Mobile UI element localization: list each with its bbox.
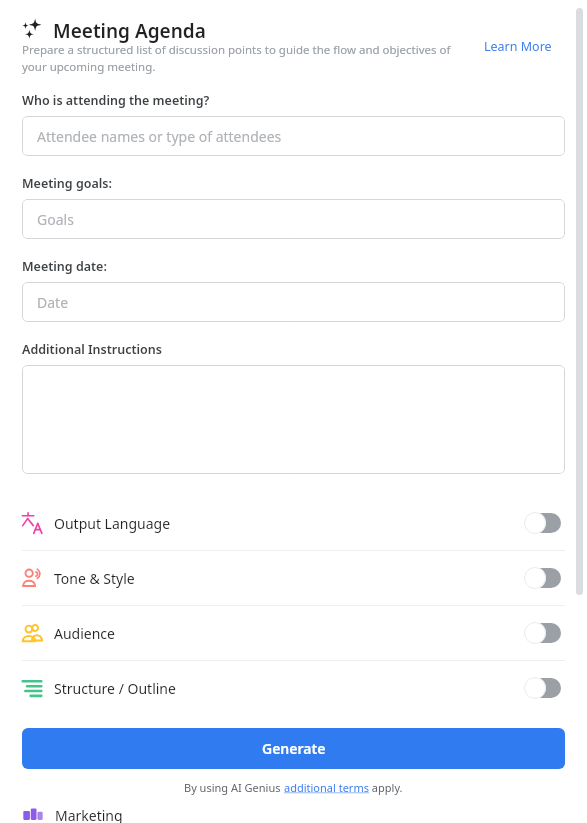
button[interactable]: Generate xyxy=(22,728,565,769)
button[interactable] xyxy=(22,365,565,474)
button[interactable]: Output Language xyxy=(0,496,587,550)
staticText: Meeting Agenda xyxy=(53,18,206,44)
staticText: Structure / Outline xyxy=(54,679,176,698)
staticText: apply. xyxy=(369,780,403,795)
button[interactable]: Toggle Output Language xyxy=(514,506,572,540)
staticText: Meeting goals: xyxy=(22,175,112,192)
staticText: Who is attending the meeting? xyxy=(22,92,210,109)
staticText: Additional Instructions xyxy=(22,341,162,358)
staticText: Generate xyxy=(262,739,326,758)
staticText: Attendee names or type of attendees xyxy=(37,127,282,146)
staticText: Goals xyxy=(37,210,74,229)
button[interactable]: Goals xyxy=(22,199,565,239)
staticText: Output Language xyxy=(54,514,171,533)
staticText: Date xyxy=(37,293,69,312)
staticText: Audience xyxy=(54,624,115,643)
staticText: Meeting date: xyxy=(22,258,107,275)
staticText: Prepare a structured list of discussion … xyxy=(22,42,466,75)
button[interactable]: Audience xyxy=(0,606,587,660)
button[interactable]: Tone & Style xyxy=(0,551,587,605)
button[interactable]: Toggle Tone & Style xyxy=(514,561,572,595)
staticText: Learn More xyxy=(484,38,552,55)
button[interactable]: Toggle Structure / Outline xyxy=(514,671,572,705)
button[interactable]: Structure / Outline xyxy=(0,661,587,715)
button[interactable]: Attendee names or type of attendees xyxy=(22,116,565,156)
staticText: Marketing xyxy=(55,806,123,823)
button[interactable]: Learn More xyxy=(483,37,553,56)
button[interactable]: additional terms xyxy=(284,780,369,795)
staticText: By using AI Genius xyxy=(184,780,284,795)
staticText: Tone & Style xyxy=(54,569,135,588)
staticText: additional terms xyxy=(284,780,369,795)
button[interactable]: Marketing xyxy=(0,806,587,823)
button[interactable]: Date xyxy=(22,282,565,322)
button[interactable]: Toggle Audience xyxy=(514,616,572,650)
